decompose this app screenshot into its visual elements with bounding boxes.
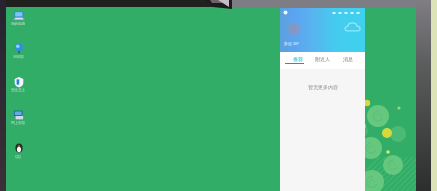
staticText: 推荐	[293, 56, 303, 62]
staticText: 多云 26°	[284, 41, 300, 46]
staticText: 我的电脑	[11, 22, 25, 26]
button[interactable]: 我的电脑	[6, 9, 30, 26]
button[interactable]: QQ	[6, 141, 30, 159]
staticText: 消息	[343, 56, 353, 62]
staticText: 网上邻居	[11, 121, 25, 125]
staticText: 浏览器	[13, 55, 24, 59]
button[interactable]: 推荐	[293, 52, 303, 65]
staticText: QQ	[15, 154, 21, 159]
button[interactable]: 消息	[343, 52, 353, 65]
button[interactable]: 浏览器	[6, 42, 30, 59]
button[interactable]: 网上邻居	[6, 108, 30, 125]
button[interactable]: 附近人	[315, 52, 330, 65]
staticText: 暂无更多内容	[308, 84, 338, 90]
button[interactable]: Weather	[344, 21, 361, 33]
button[interactable]: 安全卫士	[6, 75, 30, 92]
staticText: 附近人	[315, 56, 330, 62]
button[interactable]: Avatar	[286, 21, 302, 37]
staticText: 安全卫士	[11, 88, 25, 92]
